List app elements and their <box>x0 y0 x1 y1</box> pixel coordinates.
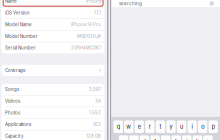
button[interactable]: iOS Version <box>1 7 104 18</box>
staticText: t <box>159 123 161 130</box>
staticText: Model Name <box>5 22 32 27</box>
staticText: 34 <box>95 98 101 104</box>
staticText: 1,552 <box>89 110 101 115</box>
button[interactable]: Applications <box>1 119 104 130</box>
button[interactable]: a <box>119 135 128 140</box>
staticText: 163 <box>93 122 101 127</box>
staticText: r <box>149 123 151 130</box>
button[interactable]: p <box>208 120 218 133</box>
button[interactable]: Capacity <box>1 131 104 140</box>
button[interactable]: i <box>187 120 197 133</box>
staticText: Capacity <box>5 133 23 139</box>
staticText: iPhone <box>86 0 101 4</box>
staticText: iPhone 14 Pro <box>71 22 101 27</box>
staticText: Model Number <box>5 34 38 39</box>
button[interactable]: t <box>156 120 165 133</box>
staticText: q <box>117 123 120 130</box>
button[interactable]: q <box>113 120 123 133</box>
staticText: f <box>154 138 156 140</box>
button[interactable]: Model Name <box>1 19 104 30</box>
staticText: Applications <box>5 122 31 127</box>
staticText: o <box>201 123 204 130</box>
staticText: Songs <box>5 87 19 92</box>
staticText: Name <box>5 0 17 4</box>
button[interactable]: o <box>198 120 207 133</box>
staticText: u <box>180 123 183 130</box>
staticText: j <box>186 138 187 140</box>
button[interactable]: Photos <box>1 107 104 118</box>
staticText: i <box>192 123 193 130</box>
staticText: Photos <box>5 110 20 115</box>
staticText: d <box>143 138 146 140</box>
button[interactable]: Coverage <box>1 65 104 76</box>
button[interactable]: e <box>135 120 144 133</box>
staticText: k <box>196 138 199 140</box>
button[interactable]: l <box>203 135 213 140</box>
staticText: l <box>207 138 208 140</box>
staticText: Coverage <box>5 68 26 73</box>
button[interactable]: Songs <box>1 84 104 95</box>
button[interactable]: d <box>140 135 149 140</box>
button[interactable]: y <box>166 120 176 133</box>
staticText: 3,087 <box>89 87 101 92</box>
button[interactable]: j <box>182 135 191 140</box>
staticText: 2VRH4WCI7K7 <box>71 45 101 51</box>
button[interactable]: u <box>177 120 186 133</box>
staticText: searching <box>119 1 142 6</box>
button[interactable]: r <box>145 120 155 133</box>
staticText: Serial Number <box>5 45 36 51</box>
button[interactable]: f <box>150 135 160 140</box>
button[interactable]: searching <box>111 0 220 7</box>
button[interactable]: g <box>161 135 170 140</box>
button[interactable]: Videos <box>1 95 104 107</box>
staticText: Videos <box>5 98 20 104</box>
button[interactable]: Name <box>1 0 104 7</box>
staticText: e <box>138 123 141 130</box>
staticText: h <box>175 138 178 140</box>
staticText: w <box>126 123 131 130</box>
staticText: y <box>169 123 172 130</box>
button[interactable]: Serial Number <box>1 42 104 54</box>
button[interactable]: s <box>129 135 139 140</box>
staticText: iOS Version <box>5 10 30 15</box>
staticText: MQ0G3LL/A <box>77 34 101 39</box>
staticText: p <box>212 123 215 130</box>
button[interactable]: h <box>172 135 181 140</box>
staticText: 128 GB <box>86 134 101 139</box>
button[interactable]: k <box>193 135 202 140</box>
button[interactable]: Model Number <box>1 31 104 42</box>
button[interactable]: w <box>124 120 133 133</box>
staticText: 17.1 <box>94 10 101 15</box>
